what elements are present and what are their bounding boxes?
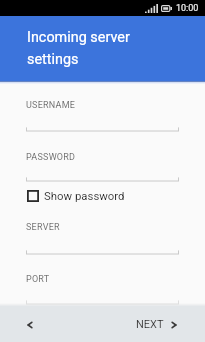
- staticText: USERNAME: [26, 100, 76, 111]
- button[interactable]: NEXT: [136, 318, 180, 331]
- staticText: Incoming server settings: [27, 29, 130, 68]
- button[interactable]: Show password: [27, 189, 125, 202]
- staticText: Show password: [44, 189, 125, 202]
- staticText: PORT: [26, 274, 50, 285]
- staticText: NEXT: [136, 318, 164, 331]
- staticText: PASSWORD: [26, 152, 76, 163]
- staticText: SERVER: [26, 222, 60, 233]
- button[interactable]: Back: [18, 313, 41, 336]
- staticText: 10:00: [176, 3, 199, 14]
